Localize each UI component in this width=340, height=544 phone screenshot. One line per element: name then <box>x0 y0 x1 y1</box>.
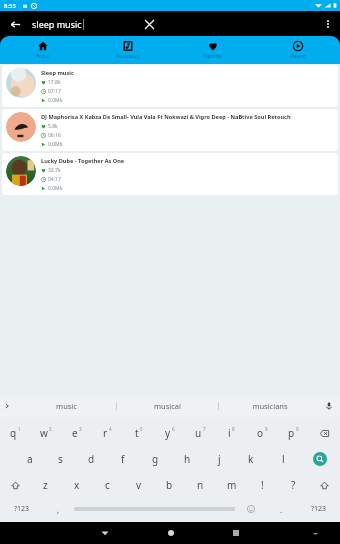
button[interactable]: More options <box>319 15 337 33</box>
button[interactable]: musicians <box>219 395 320 417</box>
button[interactable]: m <box>216 472 247 498</box>
staticText: Lucky Dube - Together As One <box>41 157 125 165</box>
button[interactable]: . <box>266 498 297 520</box>
button[interactable]: ?123 <box>297 498 340 520</box>
button[interactable]: p <box>278 420 309 446</box>
staticText: 1 <box>18 426 21 432</box>
button[interactable]: s <box>45 446 76 472</box>
button[interactable]: , <box>43 498 74 520</box>
staticText: w <box>40 426 48 440</box>
button[interactable]: ! <box>247 472 278 498</box>
staticText: k <box>248 452 254 466</box>
staticText: Playing <box>290 53 306 59</box>
staticText: ! <box>261 478 264 492</box>
button[interactable]: Back <box>6 15 24 33</box>
button[interactable]: Shift <box>0 472 30 498</box>
staticText: Favorite <box>204 53 222 59</box>
staticText: v <box>136 478 142 492</box>
button[interactable]: n <box>185 472 216 498</box>
staticText: . <box>280 504 283 515</box>
button[interactable]: x <box>61 472 92 498</box>
button[interactable]: musical <box>117 395 218 417</box>
button[interactable]: o <box>247 420 278 446</box>
staticText: ?123 <box>311 504 327 514</box>
button[interactable]: Voice input <box>322 399 336 413</box>
button[interactable] <box>74 504 235 514</box>
button[interactable]: r <box>92 420 123 446</box>
staticText: y <box>165 426 171 440</box>
button[interactable]: Sleep music <box>2 65 338 107</box>
button[interactable]: v <box>123 472 154 498</box>
button[interactable]: ?123 <box>0 498 43 520</box>
staticText: t <box>135 426 139 440</box>
button[interactable]: b <box>154 472 185 498</box>
staticText: b <box>166 478 173 492</box>
staticText: musical <box>154 401 181 411</box>
staticText: Downloads <box>116 53 140 59</box>
button[interactable]: ? <box>278 472 309 498</box>
staticText: 0.0Mb <box>48 185 63 192</box>
button[interactable]: Backspace <box>309 420 340 446</box>
button[interactable]: Hide keyboard <box>308 526 322 540</box>
button[interactable]: i <box>216 420 247 446</box>
button[interactable]: q <box>0 420 30 446</box>
staticText: z <box>43 478 48 492</box>
staticText: 0 <box>296 426 299 432</box>
button[interactable]: Recents <box>228 525 244 541</box>
button[interactable]: w <box>30 420 61 446</box>
staticText: , <box>57 504 60 515</box>
button[interactable]: music <box>16 395 116 417</box>
staticText: e <box>72 426 78 440</box>
staticText: h <box>184 452 191 466</box>
button[interactable]: g <box>139 446 171 472</box>
staticText: 8 <box>232 426 235 432</box>
button[interactable]: Emoji <box>235 498 266 520</box>
button[interactable]: DJ Maphorisa X Kabza De Small- Vula Vala… <box>2 109 338 151</box>
button[interactable]: a <box>14 446 45 472</box>
staticText: ? <box>291 478 296 492</box>
button[interactable]: l <box>267 446 299 472</box>
staticText: d <box>88 452 95 466</box>
staticText: u <box>195 426 202 440</box>
staticText: 8:55 <box>4 2 16 10</box>
button[interactable]: Clear <box>140 15 158 33</box>
button[interactable]: Lucky Dube - Together As One <box>2 153 338 195</box>
staticText: 5.8k <box>48 123 58 130</box>
button[interactable]: z <box>30 472 61 498</box>
staticText: Sleep music <box>41 69 74 77</box>
staticText: c <box>105 478 110 492</box>
button[interactable]: Search <box>299 446 340 472</box>
button[interactable]: u <box>185 420 216 446</box>
button[interactable]: j <box>203 446 235 472</box>
button[interactable]: Home <box>0 36 85 64</box>
staticText: ?123 <box>14 504 30 514</box>
button[interactable]: t <box>123 420 154 446</box>
staticText: DJ Maphorisa X Kabza De Small- Vula Vala… <box>41 113 291 121</box>
button[interactable]: Playing <box>255 36 340 64</box>
button[interactable]: Favorite <box>170 36 255 64</box>
staticText: 04:17 <box>48 176 61 183</box>
button[interactable]: Downloads <box>85 36 170 64</box>
button[interactable]: k <box>235 446 267 472</box>
staticText: a <box>27 452 33 466</box>
staticText: x <box>74 478 80 492</box>
staticText: sleep music <box>32 18 82 30</box>
staticText: Home <box>36 53 49 59</box>
button[interactable]: y <box>154 420 185 446</box>
button[interactable]: Back <box>97 525 113 541</box>
button[interactable]: f <box>107 446 139 472</box>
button[interactable]: d <box>76 446 107 472</box>
button[interactable]: Home <box>163 525 179 541</box>
staticText: f <box>121 452 125 466</box>
staticText: s <box>58 452 63 466</box>
staticText: 0.0Mb <box>48 97 63 104</box>
button[interactable]: c <box>92 472 123 498</box>
button[interactable]: h <box>171 446 203 472</box>
button[interactable]: Expand suggestions <box>0 399 14 413</box>
staticText: 0.0Mb <box>48 141 63 148</box>
staticText: q <box>10 426 17 440</box>
button[interactable]: e <box>61 420 92 446</box>
staticText: j <box>218 452 221 466</box>
staticText: o <box>257 426 264 440</box>
button[interactable]: Shift <box>309 472 340 498</box>
